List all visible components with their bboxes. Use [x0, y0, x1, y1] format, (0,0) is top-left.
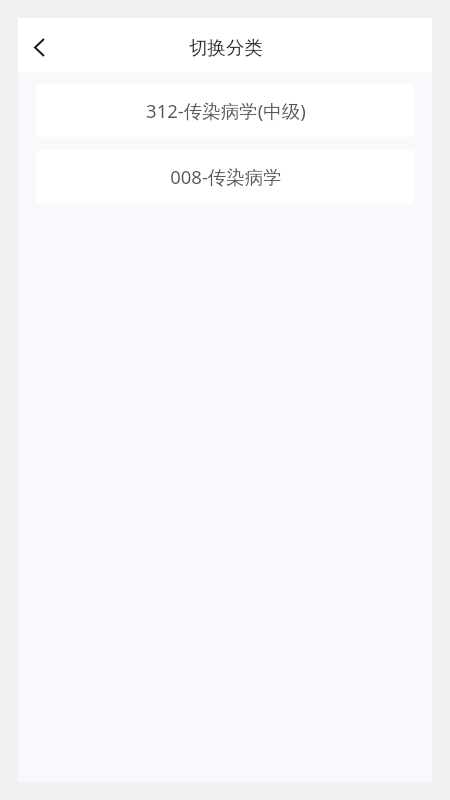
- button[interactable]: 008-传染病学: [36, 150, 414, 203]
- staticText: 切换分类: [189, 36, 263, 59]
- button[interactable]: 312-传染病学(中级): [36, 84, 414, 137]
- staticText: 008-传染病学: [170, 164, 282, 189]
- button[interactable]: Back: [22, 30, 56, 64]
- staticText: 312-传染病学(中级): [146, 98, 306, 123]
